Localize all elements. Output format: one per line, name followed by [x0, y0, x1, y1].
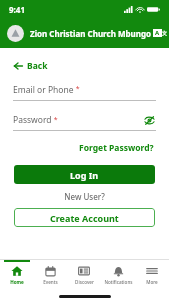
staticText: A — [155, 29, 160, 37]
staticText: * — [52, 115, 58, 125]
staticText: Back — [27, 60, 48, 72]
button[interactable]: More — [135, 260, 169, 293]
button[interactable]: Back — [11, 58, 50, 74]
button[interactable]: Password — [13, 113, 156, 131]
staticText: More — [146, 279, 158, 285]
staticText: * — [74, 84, 80, 94]
button[interactable]: Profile logo — [7, 25, 24, 42]
button[interactable]: Events — [33, 260, 67, 293]
button[interactable]: Show password — [142, 113, 156, 127]
button[interactable]: Home — [0, 260, 33, 293]
button[interactable]: Email or Phone — [13, 84, 156, 101]
staticText: 9:41 — [9, 4, 25, 15]
button[interactable]: Translate — [153, 29, 162, 37]
staticText: Log In — [70, 169, 99, 181]
button[interactable]: Log In — [14, 165, 155, 184]
button[interactable]: New User? — [63, 190, 106, 203]
staticText: Discover — [75, 279, 94, 285]
staticText: Events — [43, 279, 58, 285]
staticText: Password — [13, 114, 52, 126]
staticText: Zion Christian Church Mbungo — [30, 28, 151, 39]
button[interactable]: Discover — [67, 260, 101, 293]
button[interactable]: Notifications — [101, 260, 135, 293]
button[interactable]: Forget Password? — [77, 140, 156, 156]
button[interactable]: Create Account — [14, 208, 155, 227]
staticText: Notifications — [104, 279, 133, 285]
staticText: Email or Phone — [13, 84, 74, 96]
staticText: Home — [10, 279, 24, 285]
staticText: Create Account — [50, 212, 119, 224]
